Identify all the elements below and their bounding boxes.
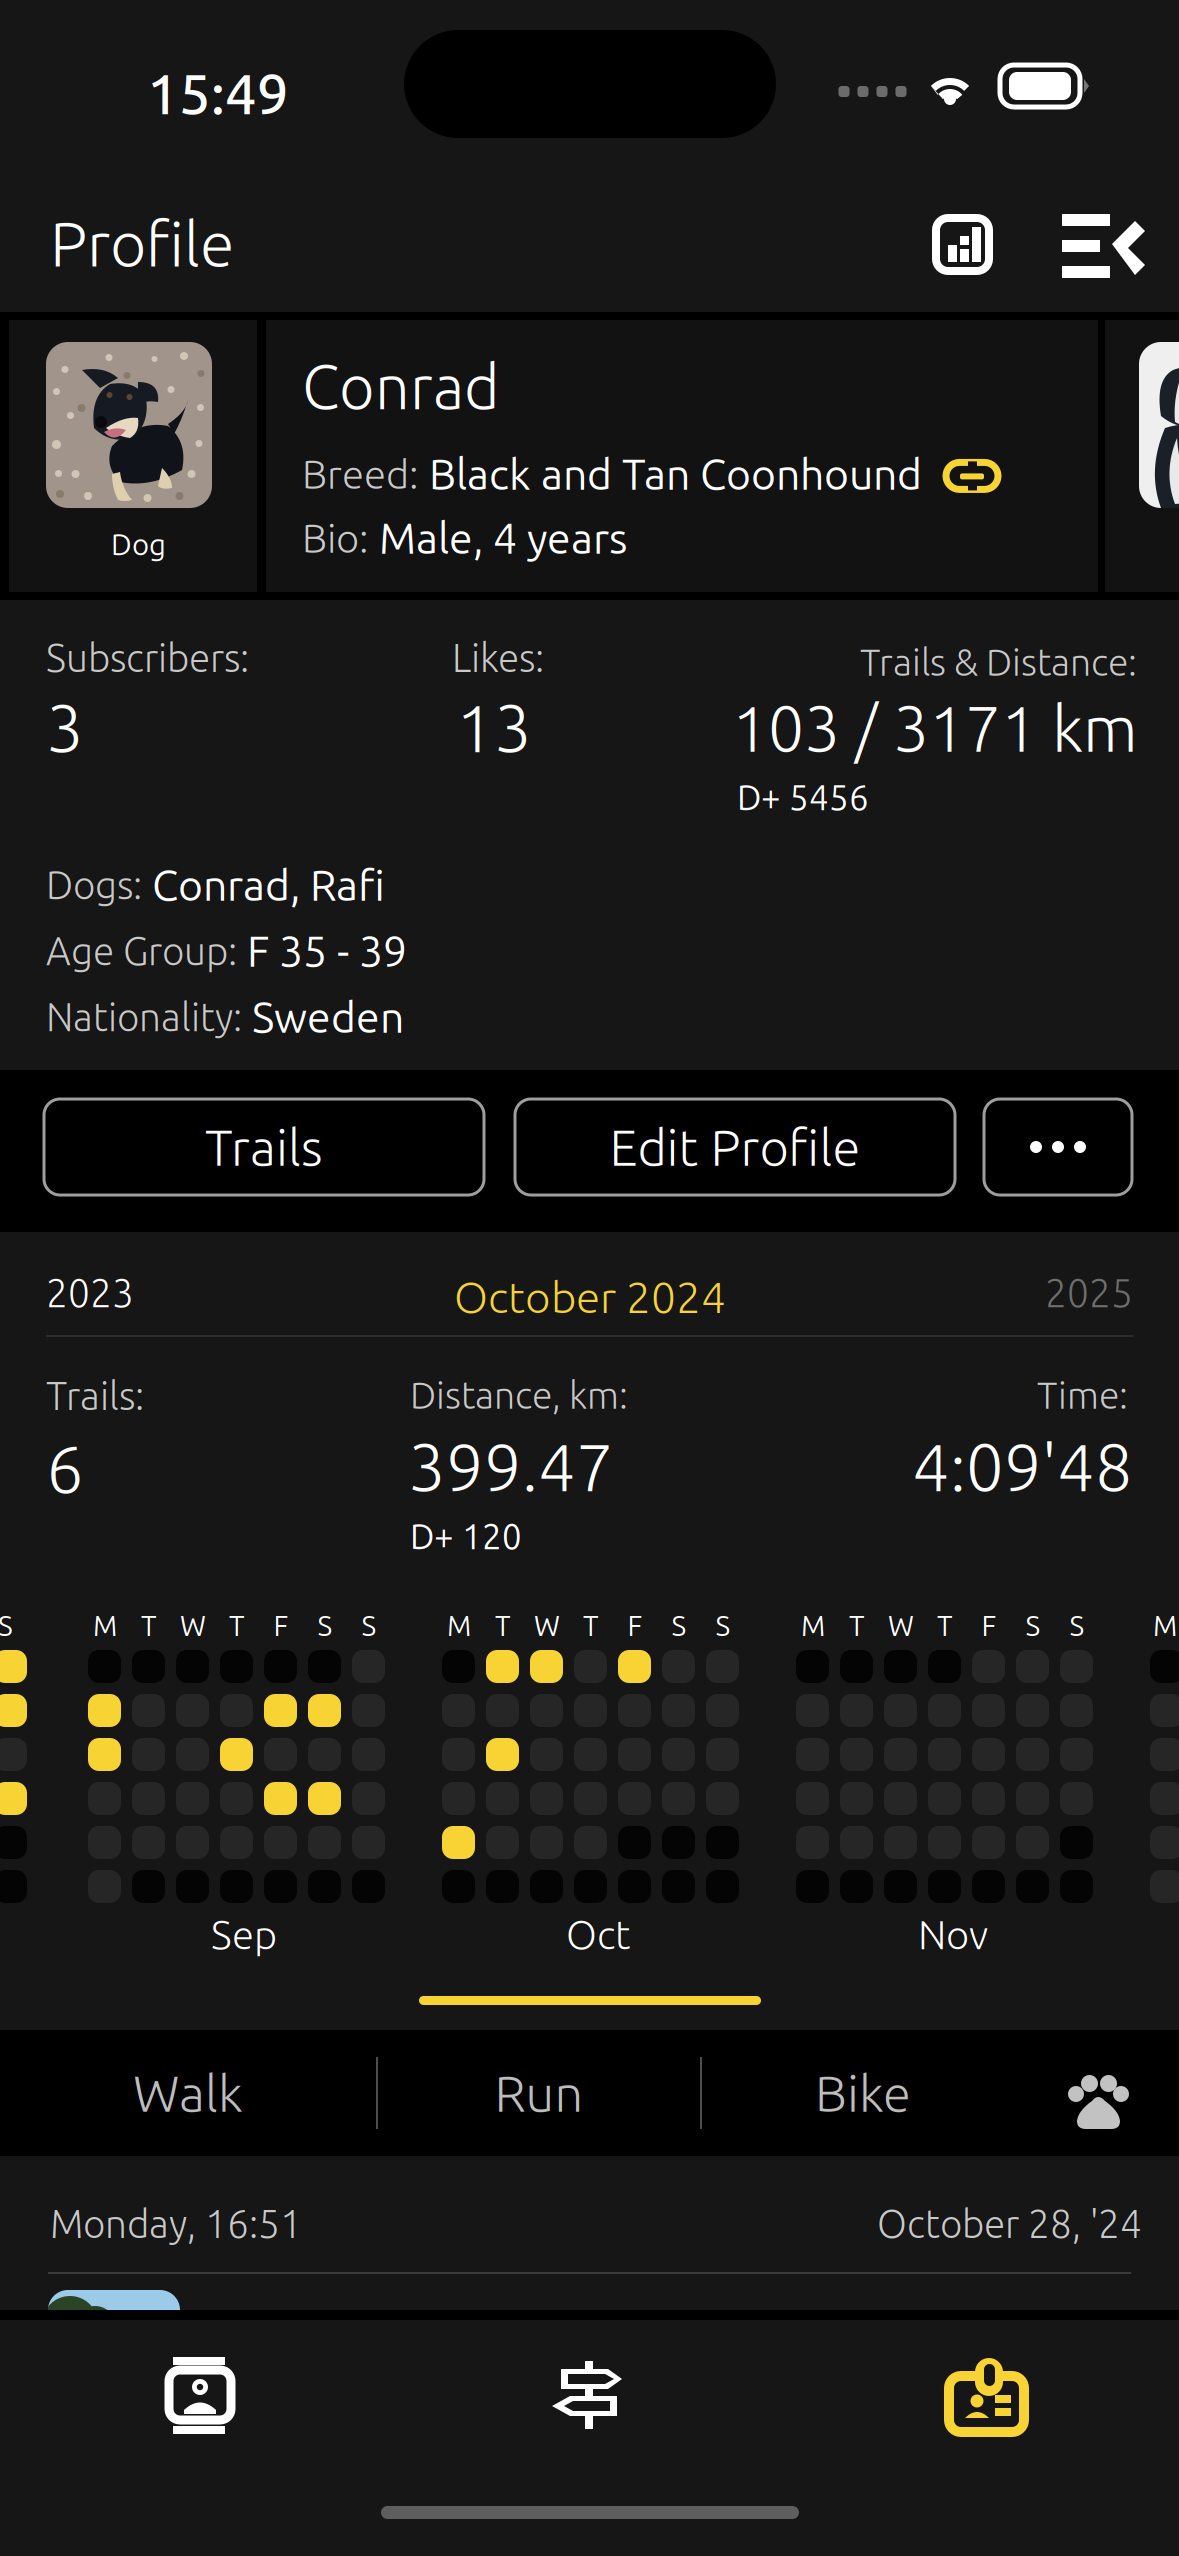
staticText: F bbox=[981, 1610, 996, 1641]
staticText: Run bbox=[494, 2065, 583, 2121]
staticText: Nationality: bbox=[46, 995, 242, 1038]
staticText: S bbox=[317, 1610, 332, 1641]
button[interactable]: Menu bbox=[1050, 190, 1176, 310]
staticText: Conrad bbox=[302, 352, 500, 421]
button[interactable]: Profile card bbox=[5, 2334, 398, 2456]
staticText: D+ 120 bbox=[410, 1517, 522, 1556]
staticText: W bbox=[180, 1610, 206, 1641]
staticText: October 2024 bbox=[454, 1272, 726, 1321]
staticText: T bbox=[495, 1610, 511, 1641]
staticText: Trails: bbox=[46, 1374, 144, 1417]
staticText: F bbox=[627, 1610, 642, 1641]
staticText: M bbox=[801, 1610, 825, 1641]
staticText: S bbox=[0, 1610, 13, 1641]
staticText: M bbox=[447, 1610, 471, 1641]
staticText: T bbox=[141, 1610, 157, 1641]
staticText: 2025 bbox=[1045, 1271, 1133, 1315]
staticText: Breed: bbox=[302, 451, 419, 496]
staticText: 15:49 bbox=[147, 62, 289, 125]
staticText: Trails bbox=[205, 1119, 323, 1175]
staticText: S bbox=[361, 1610, 376, 1641]
button[interactable]: Trails bbox=[396, 2340, 789, 2462]
button[interactable]: Dogs bbox=[1050, 2059, 1160, 2149]
staticText: W bbox=[534, 1610, 560, 1641]
staticText: S bbox=[671, 1610, 686, 1641]
staticText: Sweden bbox=[242, 993, 404, 1041]
button[interactable]: 2025 bbox=[973, 1262, 1133, 1324]
staticText: M bbox=[93, 1610, 117, 1641]
staticText: 399.47 bbox=[408, 1429, 614, 1504]
staticText: T bbox=[937, 1610, 953, 1641]
staticText: Distance, km: bbox=[410, 1374, 628, 1416]
staticText: Sep bbox=[211, 1912, 277, 1957]
button[interactable]: Statistics bbox=[902, 190, 1022, 310]
staticText: Age Group: bbox=[46, 929, 237, 972]
staticText: 4:09'48 bbox=[912, 1429, 1133, 1504]
staticText: Subscribers: bbox=[46, 636, 249, 679]
staticText: F bbox=[273, 1610, 288, 1641]
staticText: Conrad, Rafi bbox=[142, 861, 385, 909]
staticText: Black and Tan Coonhound bbox=[419, 450, 922, 498]
button[interactable]: My profile bbox=[790, 2340, 1179, 2462]
staticText: Dogs: bbox=[46, 863, 142, 906]
staticText: T bbox=[229, 1610, 245, 1641]
staticText: D+ 5456 bbox=[737, 778, 869, 817]
button[interactable]: More options bbox=[984, 1099, 1132, 1195]
button[interactable]: Bike bbox=[702, 2030, 1024, 2156]
staticText: F 35 - 39 bbox=[237, 927, 407, 975]
staticText: 2023 bbox=[46, 1271, 134, 1315]
staticText: M bbox=[1153, 1610, 1177, 1641]
staticText: Oct bbox=[566, 1912, 630, 1957]
staticText: 6 bbox=[46, 1431, 84, 1506]
button[interactable]: Edit Profile bbox=[515, 1099, 955, 1195]
staticText: S bbox=[1025, 1610, 1040, 1641]
staticText: T bbox=[849, 1610, 865, 1641]
staticText: Walk bbox=[133, 2065, 243, 2121]
staticText: Likes: bbox=[452, 636, 544, 679]
staticText: Male, 4 years bbox=[369, 514, 628, 562]
staticText: W bbox=[888, 1610, 914, 1641]
staticText: Edit Profile bbox=[609, 1119, 860, 1175]
staticText: Dog bbox=[111, 528, 166, 561]
button[interactable]: Dog bbox=[9, 320, 257, 592]
staticText: Trails & Distance: bbox=[860, 641, 1137, 683]
staticText: S bbox=[715, 1610, 730, 1641]
staticText: Profile bbox=[50, 208, 234, 278]
staticText: October 28, '24 bbox=[877, 2202, 1142, 2245]
button[interactable]: Run bbox=[378, 2030, 700, 2156]
button[interactable]: Conrad bbox=[266, 320, 1098, 592]
staticText: Nov bbox=[918, 1912, 988, 1957]
button[interactable]: Trails bbox=[44, 1099, 484, 1195]
staticText: Monday, 16:51 bbox=[50, 2202, 302, 2245]
staticText: Bio: bbox=[302, 515, 369, 560]
staticText: S bbox=[1069, 1610, 1084, 1641]
button[interactable]: Walk bbox=[0, 2030, 376, 2156]
staticText: T bbox=[583, 1610, 599, 1641]
staticText: Bike bbox=[815, 2065, 911, 2121]
staticText: 3 bbox=[46, 690, 84, 765]
staticText: Time: bbox=[1037, 1374, 1128, 1416]
staticText: 13 bbox=[456, 690, 532, 765]
staticText: 103 / 3171 km bbox=[732, 692, 1138, 764]
button[interactable]: 2023 bbox=[46, 1262, 206, 1324]
